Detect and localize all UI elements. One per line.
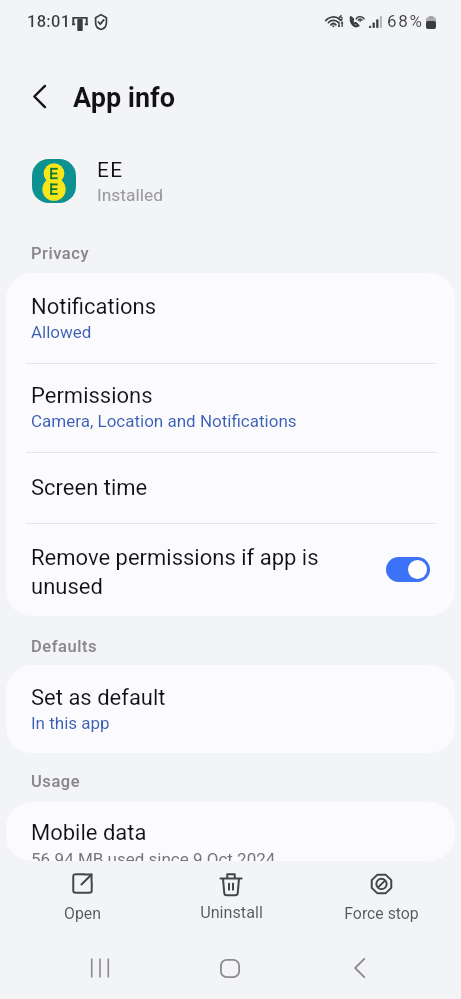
button[interactable] <box>6 363 455 452</box>
button[interactable]: Recents <box>70 938 130 998</box>
staticText: Installed <box>97 185 163 205</box>
staticText: unused <box>31 574 103 600</box>
button[interactable]: Home <box>200 938 260 998</box>
staticText: Usage <box>31 772 81 791</box>
button[interactable] <box>6 802 455 861</box>
button[interactable]: Back <box>21 78 57 114</box>
staticText: Camera, Location and Notifications <box>31 411 297 431</box>
staticText: Open <box>64 904 101 923</box>
button[interactable] <box>6 273 455 363</box>
button[interactable] <box>6 452 455 524</box>
staticText: Privacy <box>31 244 90 263</box>
button[interactable]: Back <box>329 938 389 998</box>
staticText: Screen time <box>31 475 148 501</box>
staticText: Set as default <box>31 685 166 711</box>
button[interactable] <box>6 665 455 753</box>
staticText: 18:01 <box>27 12 71 31</box>
button[interactable]: Uninstall <box>169 866 293 928</box>
staticText: Mobile data <box>31 820 147 846</box>
button[interactable]: Open <box>20 866 144 928</box>
staticText: Notifications <box>31 294 157 320</box>
button[interactable] <box>6 140 455 220</box>
staticText: Force stop <box>344 904 419 923</box>
staticText: 56.94 MB used since 9 Oct 2024 <box>31 849 276 869</box>
staticText: Allowed <box>31 322 92 342</box>
staticText: App info <box>73 82 175 114</box>
staticText: Uninstall <box>200 903 263 922</box>
button[interactable] <box>6 523 455 616</box>
staticText: In this app <box>31 713 110 733</box>
staticText: Permissions <box>31 383 153 409</box>
button[interactable]: Force stop <box>319 866 443 928</box>
staticText: Defaults <box>31 637 98 656</box>
staticText: Remove permissions if app is <box>31 545 319 571</box>
staticText: EE <box>97 158 124 183</box>
staticText: 68% <box>387 11 424 31</box>
